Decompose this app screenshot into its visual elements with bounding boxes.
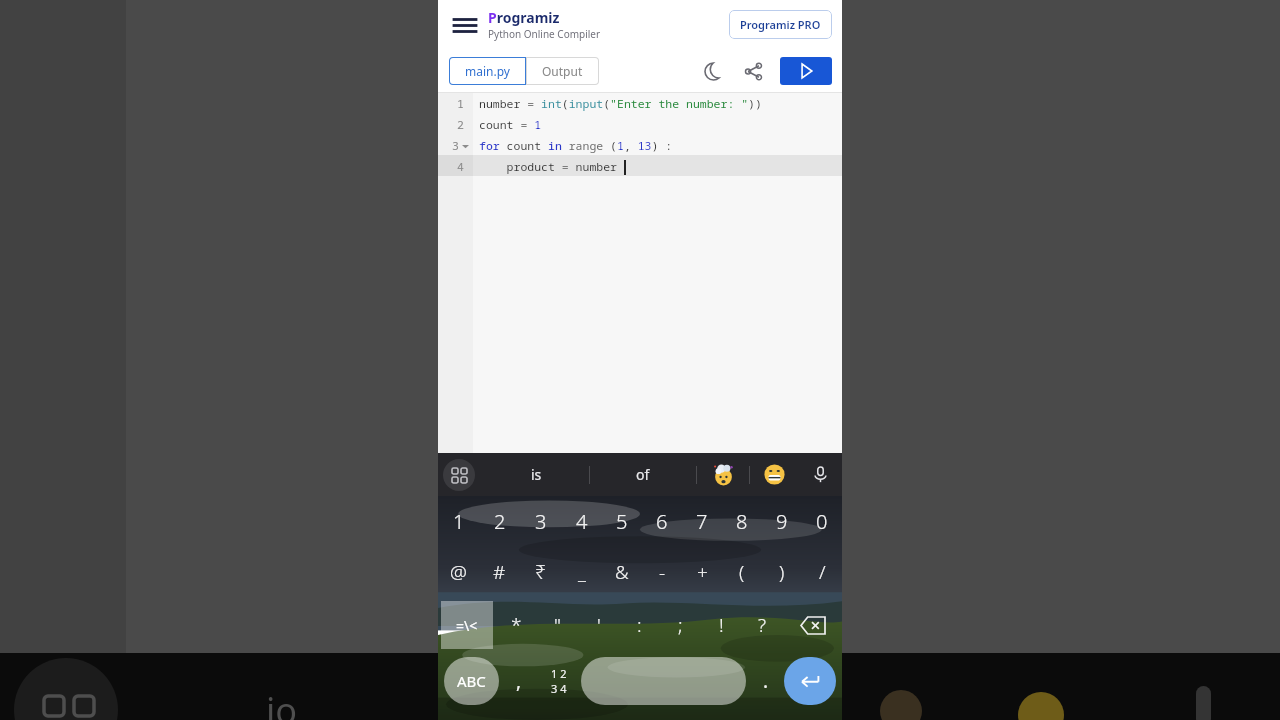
button[interactable]: 4: [561, 496, 602, 546]
button[interactable]: Share: [740, 58, 766, 84]
staticText: =\<: [456, 616, 478, 635]
staticText: ,: [516, 668, 522, 694]
button[interactable]: ABC: [444, 657, 499, 705]
button[interactable]: ): [762, 546, 802, 598]
button[interactable]: *: [496, 598, 537, 652]
button[interactable]: of: [590, 453, 696, 496]
button[interactable]: Enter: [784, 657, 836, 705]
button[interactable]: &: [602, 546, 642, 598]
staticText: 2: [494, 508, 506, 535]
button[interactable]: 2: [479, 496, 520, 546]
button[interactable]: /: [802, 546, 842, 598]
staticText: -: [659, 559, 666, 585]
button[interactable]: 0: [802, 496, 842, 546]
staticText: _: [578, 559, 586, 585]
button[interactable]: #: [479, 546, 520, 598]
staticText: +: [697, 559, 708, 585]
staticText: of: [636, 465, 650, 484]
staticText: /: [819, 559, 826, 585]
staticText: Programiz: [488, 8, 560, 27]
staticText: is: [531, 465, 542, 484]
button[interactable]: !: [701, 598, 742, 652]
button[interactable]: ?: [742, 598, 783, 652]
button[interactable]: Programiz PRO: [729, 10, 832, 39]
staticText: 9: [776, 508, 788, 535]
button[interactable]: Backspace: [783, 598, 842, 652]
staticText: @: [450, 559, 467, 585]
button[interactable]: 3: [520, 496, 561, 546]
button[interactable]: -: [642, 546, 682, 598]
staticText: number = int(input("Enter the number: ")…: [479, 96, 762, 112]
button[interactable]: ₹: [520, 546, 561, 598]
button[interactable]: Run: [780, 57, 832, 85]
button[interactable]: Voice input: [798, 453, 842, 496]
button[interactable]: 9: [762, 496, 802, 546]
button[interactable]: ": [537, 598, 578, 652]
staticText: #: [493, 559, 506, 585]
button[interactable]: Emoji grin: [750, 453, 798, 496]
staticText: io: [266, 686, 298, 720]
staticText: count = 1: [479, 117, 542, 133]
staticText: ": [554, 612, 561, 638]
staticText: 1: [453, 508, 465, 535]
staticText: .: [763, 668, 769, 694]
staticText: 2: [457, 117, 464, 133]
button[interactable]: 7: [682, 496, 722, 546]
staticText: ): [779, 559, 785, 585]
staticText: for count in range (1, 13) :: [479, 138, 673, 154]
staticText: 1: [457, 96, 464, 112]
staticText: 4: [457, 159, 464, 175]
button[interactable]: Dark mode: [700, 58, 726, 84]
button[interactable]: :: [619, 598, 660, 652]
staticText: Programiz PRO: [740, 17, 821, 32]
staticText: *: [511, 612, 522, 638]
button[interactable]: Output: [526, 57, 599, 85]
staticText: ': [597, 612, 601, 638]
button[interactable]: 5: [602, 496, 642, 546]
staticText: 8: [736, 508, 748, 535]
staticText: ;: [678, 612, 683, 638]
staticText: 3: [535, 508, 547, 535]
staticText: 0: [816, 508, 828, 535]
button[interactable]: +: [682, 546, 722, 598]
button[interactable]: is: [484, 453, 589, 496]
button[interactable]: 8: [722, 496, 762, 546]
button[interactable]: Space: [581, 657, 746, 705]
button[interactable]: Emoji exploding head: [697, 453, 749, 496]
staticText: 3 4: [551, 681, 567, 696]
staticText: Output: [542, 63, 583, 79]
staticText: 3: [452, 138, 459, 154]
button[interactable]: (: [722, 546, 762, 598]
staticText: (: [739, 559, 745, 585]
button[interactable]: ;: [660, 598, 701, 652]
staticText: 4: [576, 508, 588, 535]
staticText: &: [615, 559, 629, 585]
button[interactable]: =\<: [441, 601, 493, 649]
button[interactable]: Menu: [450, 10, 480, 40]
button[interactable]: 6: [642, 496, 682, 546]
staticText: 7: [696, 508, 708, 535]
button[interactable]: .: [748, 657, 784, 705]
button[interactable]: @: [438, 546, 479, 598]
button[interactable]: ,: [499, 657, 539, 705]
staticText: product = number: [479, 159, 624, 175]
staticText: 1 2: [551, 666, 567, 681]
button[interactable]: Keyboard options: [443, 459, 475, 491]
staticText: 5: [616, 508, 628, 535]
button[interactable]: main.py: [449, 57, 526, 85]
button[interactable]: Numbers: [539, 657, 579, 705]
staticText: Python Online Compiler: [488, 27, 601, 41]
staticText: ABC: [457, 671, 486, 691]
button[interactable]: _: [561, 546, 602, 598]
staticText: :: [637, 612, 642, 638]
staticText: ?: [758, 612, 767, 638]
staticText: 6: [656, 508, 668, 535]
staticText: main.py: [465, 63, 510, 79]
button[interactable]: ': [578, 598, 619, 652]
button[interactable]: 1: [438, 496, 479, 546]
staticText: !: [719, 612, 724, 638]
staticText: ₹: [535, 559, 546, 585]
